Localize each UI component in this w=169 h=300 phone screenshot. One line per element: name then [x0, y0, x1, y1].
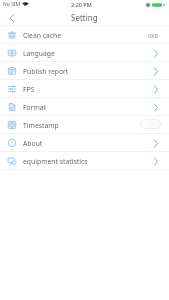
staticText: FPS — [23, 85, 35, 94]
staticText: equipment statistics — [23, 157, 88, 166]
staticText: No SIM — [3, 1, 21, 8]
button[interactable]: Timestamp toggle — [140, 119, 161, 129]
staticText: Publish report — [23, 67, 69, 76]
button[interactable]: Language — [0, 44, 169, 62]
button[interactable]: Timestamp — [0, 116, 169, 134]
staticText: About — [23, 139, 43, 148]
button[interactable]: FPS — [0, 80, 169, 98]
staticText: 2:20 PM — [71, 1, 92, 8]
button[interactable]: Publish report — [0, 62, 169, 80]
button[interactable]: Format — [0, 98, 169, 116]
button[interactable]: equipment statistics — [0, 152, 169, 170]
staticText: Language — [23, 49, 55, 58]
button[interactable]: About — [0, 134, 169, 152]
staticText: 0KB — [148, 32, 159, 39]
button[interactable]: Back — [0, 9, 22, 26]
staticText: Setting — [71, 12, 98, 23]
staticText: Clean cache — [23, 31, 62, 40]
button[interactable]: Clean cache — [0, 26, 169, 44]
staticText: Format — [23, 103, 47, 112]
staticText: Timestamp — [23, 121, 59, 130]
